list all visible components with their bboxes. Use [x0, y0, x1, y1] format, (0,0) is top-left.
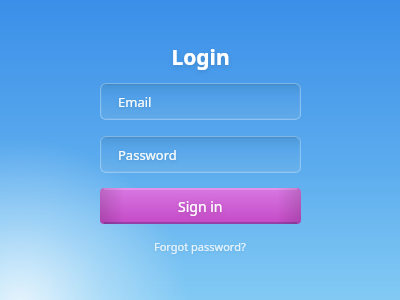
staticText: Forgot password? [154, 239, 246, 254]
staticText: Login [171, 43, 230, 72]
staticText: Password [118, 146, 177, 164]
staticText: Email [118, 93, 152, 111]
button[interactable]: Email [100, 83, 301, 120]
staticText: Sign in [178, 197, 223, 216]
button[interactable]: Password [100, 136, 301, 173]
button[interactable]: Sign in [100, 188, 301, 224]
button[interactable]: Forgot password? [148, 237, 252, 256]
